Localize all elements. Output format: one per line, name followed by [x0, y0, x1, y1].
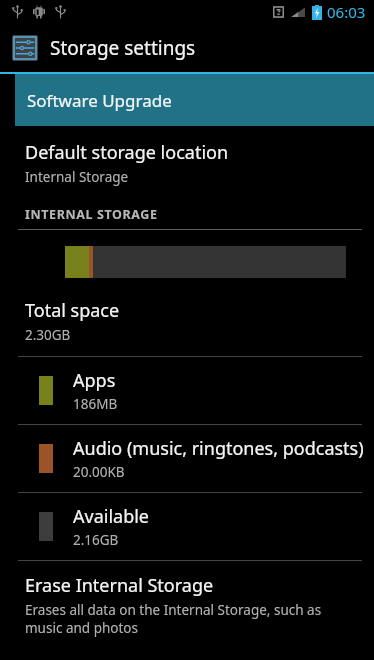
button[interactable]: Total space — [0, 294, 374, 356]
staticText: Storage settings — [50, 35, 196, 61]
staticText: Erase Internal Storage — [25, 573, 214, 598]
staticText: Apps — [73, 368, 116, 393]
staticText: Total space — [25, 298, 120, 323]
staticText: 2.16GB — [73, 531, 119, 549]
button[interactable]: Available — [0, 493, 374, 560]
staticText: Default storage location — [25, 140, 229, 165]
staticText: Internal Storage — [25, 168, 129, 186]
button[interactable]: Storage settings — [0, 24, 374, 72]
staticText: Available — [73, 504, 149, 529]
staticText: 2.30GB — [25, 326, 71, 344]
button[interactable]: Erase Internal Storage — [0, 561, 374, 649]
staticText: 06:03 — [327, 2, 366, 22]
staticText: Software Upgrade — [27, 89, 172, 112]
button[interactable]: Audio (music, ringtones, podcasts) — [0, 425, 374, 492]
staticText: INTERNAL STORAGE — [25, 206, 158, 223]
staticText: Audio (music, ringtones, podcasts) — [73, 436, 364, 461]
button[interactable]: Software Upgrade — [15, 74, 374, 126]
staticText: 186MB — [73, 395, 118, 413]
staticText: 20.00KB — [73, 463, 125, 481]
staticText: Erases all data on the Internal Storage,… — [25, 601, 354, 637]
button[interactable]: Apps — [0, 357, 374, 424]
button[interactable]: Default storage location — [0, 126, 374, 196]
